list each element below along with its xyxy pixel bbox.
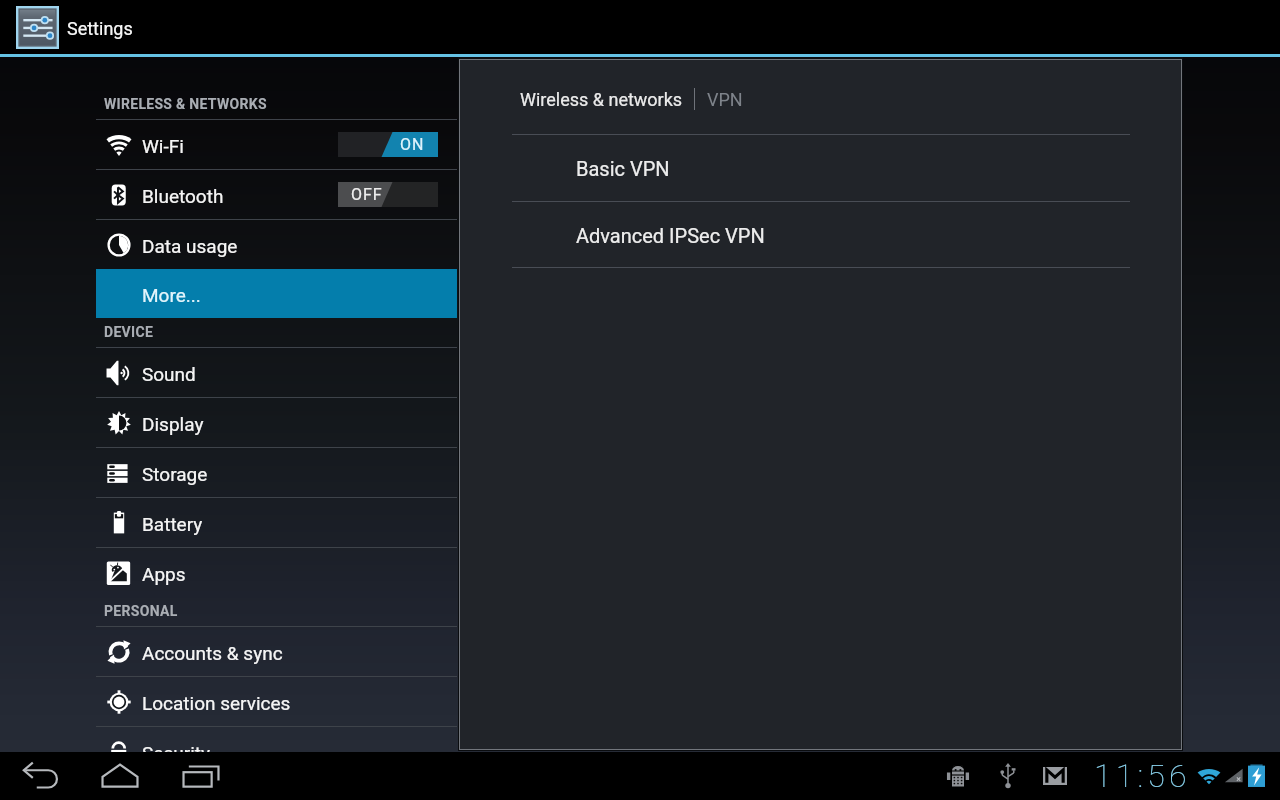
button[interactable]: Apps	[96, 548, 457, 597]
button[interactable]: More...	[96, 269, 457, 318]
staticText: Basic VPN	[576, 157, 670, 180]
button[interactable]: Basic VPN	[460, 135, 1181, 201]
staticText: VPN	[707, 89, 743, 110]
button[interactable]: Location services	[96, 677, 457, 726]
button[interactable]: Toggle on	[338, 132, 438, 157]
staticText: Location services	[142, 692, 291, 714]
staticText: OFF	[351, 185, 383, 204]
staticText: Advanced IPSec VPN	[576, 224, 765, 247]
staticText: Apps	[142, 563, 186, 585]
button[interactable]: Back	[16, 752, 64, 800]
staticText: Accounts & sync	[142, 642, 283, 664]
staticText: 11:56	[1094, 757, 1191, 795]
staticText: Display	[142, 413, 204, 435]
staticText: Storage	[142, 463, 208, 485]
staticText: PERSONAL	[104, 603, 178, 619]
button[interactable]: Settings app	[16, 6, 59, 49]
button[interactable]: Data usage	[96, 220, 457, 269]
button[interactable]: Wi-Fi	[96, 120, 457, 169]
staticText: Data usage	[142, 235, 238, 257]
staticText: Wireless & networks	[520, 89, 683, 110]
staticText: More...	[142, 284, 201, 306]
staticText: Sound	[142, 363, 196, 385]
button[interactable]: Toggle off	[338, 182, 438, 207]
button[interactable]: Advanced IPSec VPN	[460, 202, 1181, 268]
staticText: ON	[400, 135, 425, 154]
staticText: DEVICE	[104, 324, 154, 340]
staticText: Security	[142, 742, 211, 764]
button[interactable]: Sound	[96, 348, 457, 397]
staticText: Settings	[67, 18, 133, 39]
button[interactable]: Accounts & sync	[96, 627, 457, 676]
button[interactable]: Recent apps	[177, 752, 225, 800]
button[interactable]: Storage	[96, 448, 457, 497]
staticText: Battery	[142, 513, 203, 535]
staticText: Bluetooth	[142, 185, 224, 207]
button[interactable]: Display	[96, 398, 457, 447]
staticText: WIRELESS & NETWORKS	[104, 96, 267, 112]
button[interactable]: Battery	[96, 498, 457, 547]
button[interactable]: Home	[96, 752, 144, 800]
button[interactable]: Bluetooth	[96, 170, 457, 219]
button[interactable]: Security	[96, 727, 457, 776]
staticText: Wi-Fi	[142, 135, 184, 157]
